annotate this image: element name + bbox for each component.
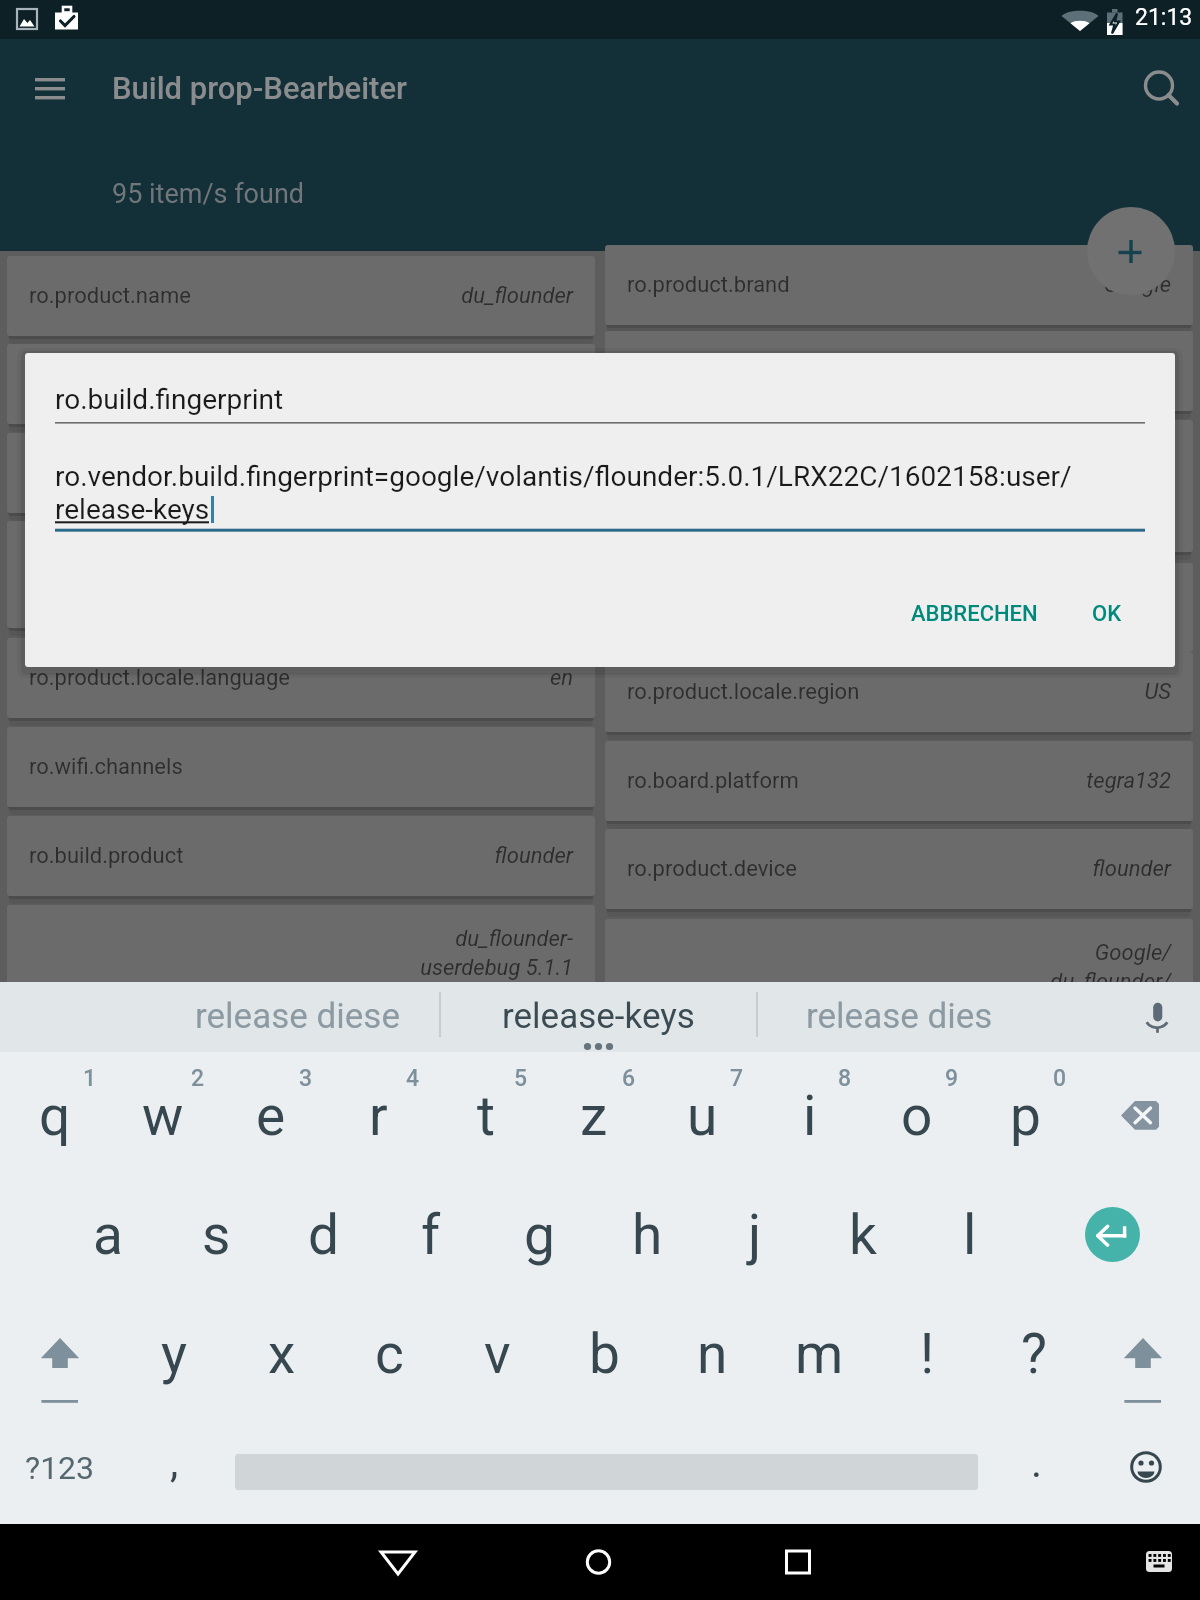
button[interactable]: j xyxy=(701,1195,809,1275)
button[interactable]: Search xyxy=(1129,56,1189,116)
button[interactable]: ro.board.platform xyxy=(605,741,1193,821)
staticText: , xyxy=(170,1438,179,1487)
staticText: 8 xyxy=(838,1065,852,1092)
button[interactable]: Home xyxy=(558,1524,638,1600)
staticText: ro.build.fingerprint xyxy=(55,383,284,416)
button[interactable]: z xyxy=(540,1076,648,1156)
button[interactable]: 2 xyxy=(144,1038,252,1118)
staticText: ABBRECHEN xyxy=(911,601,1038,627)
button[interactable]: , xyxy=(120,1422,228,1502)
staticText: test-keys xyxy=(1085,595,1171,621)
button[interactable]: du_flounder- userdebug 5.1.1 xyxy=(7,905,595,1000)
staticText: OK xyxy=(1092,601,1122,627)
button[interactable]: 9 xyxy=(898,1038,1006,1118)
button[interactable]: 4 xyxy=(359,1038,467,1118)
staticText: e xyxy=(256,1084,286,1148)
button[interactable]: k xyxy=(809,1195,917,1275)
button[interactable]: Shift xyxy=(1098,1300,1188,1410)
button[interactable]: u xyxy=(648,1076,756,1156)
button[interactable]: 5 xyxy=(467,1038,575,1118)
button[interactable]: n xyxy=(658,1314,766,1394)
button[interactable]: ABBRECHEN xyxy=(886,583,1062,645)
staticText: j xyxy=(748,1203,762,1267)
button[interactable]: Emoji xyxy=(1118,1439,1174,1495)
staticText: c xyxy=(375,1322,404,1386)
staticText: 9 xyxy=(945,1065,959,1092)
button[interactable]: l xyxy=(916,1195,1024,1275)
button[interactable]: Switch keyboard xyxy=(1129,1524,1189,1600)
staticText: ro.product.model xyxy=(29,460,198,486)
button[interactable]: c xyxy=(335,1314,443,1394)
button[interactable]: Back xyxy=(358,1524,438,1600)
button[interactable]: 3 xyxy=(252,1038,360,1118)
button[interactable]: Backspace xyxy=(1101,1080,1179,1154)
button[interactable]: Shift xyxy=(15,1300,105,1410)
staticText: x xyxy=(268,1322,296,1386)
button[interactable]: g xyxy=(485,1195,593,1275)
button[interactable]: ro.build.version.sdk xyxy=(605,331,1193,411)
button[interactable]: y xyxy=(120,1314,228,1394)
button[interactable]: ro.wifi.channels xyxy=(7,727,595,807)
button[interactable]: f xyxy=(377,1195,485,1275)
staticText: Build prop-Bearbeiter xyxy=(112,70,407,106)
button[interactable]: ro.product.locale.language xyxy=(7,638,595,718)
button[interactable]: ro.build.id xyxy=(7,521,595,628)
button[interactable]: Add property xyxy=(1087,207,1175,295)
button[interactable]: s xyxy=(162,1195,270,1275)
button[interactable]: ro.product.manufacturer xyxy=(605,420,1193,552)
staticText: d xyxy=(308,1203,340,1267)
button[interactable]: 0 xyxy=(1006,1038,1114,1118)
button[interactable]: q xyxy=(1,1076,109,1156)
staticText: n xyxy=(697,1322,728,1386)
button[interactable]: b xyxy=(550,1314,658,1394)
button[interactable]: release dies xyxy=(749,982,1049,1050)
button[interactable]: h xyxy=(593,1195,701,1275)
button[interactable]: OK xyxy=(1066,583,1148,645)
button[interactable]: ro.build.version.release xyxy=(7,344,595,424)
button[interactable]: Enter xyxy=(1085,1207,1140,1262)
button[interactable]: Google/ du_flounder/ xyxy=(605,919,1193,1014)
button[interactable]: 8 xyxy=(791,1038,899,1118)
button[interactable]: d xyxy=(270,1195,378,1275)
button[interactable]: x xyxy=(228,1314,336,1394)
button[interactable]: ! xyxy=(873,1314,981,1394)
button[interactable]: v xyxy=(443,1314,551,1394)
button[interactable]: ro.product.brand xyxy=(605,245,1193,325)
button[interactable]: 7 xyxy=(683,1038,791,1118)
button[interactable]: ro.product.name xyxy=(7,256,595,336)
staticText: k xyxy=(849,1203,877,1267)
button[interactable]: ?123 xyxy=(6,1428,114,1508)
button[interactable]: w xyxy=(109,1076,217,1156)
button[interactable]: ro.build.product xyxy=(7,816,595,896)
button[interactable]: ? xyxy=(980,1314,1088,1394)
button[interactable]: o xyxy=(863,1076,971,1156)
staticText: 6 xyxy=(622,1065,636,1092)
button[interactable]: i xyxy=(756,1076,864,1156)
button[interactable]: ro.product.locale.region xyxy=(605,652,1193,732)
staticText: ro.build.product xyxy=(29,843,184,869)
button[interactable]: ro.build.tags xyxy=(605,563,1193,652)
staticText: i xyxy=(803,1084,817,1148)
button[interactable]: 1 xyxy=(36,1038,144,1118)
button[interactable]: release-keys xyxy=(448,982,748,1050)
button[interactable]: m xyxy=(765,1314,873,1394)
button[interactable]: Open navigation drawer xyxy=(20,58,80,118)
staticText: z xyxy=(580,1084,608,1148)
button[interactable]: ro.product.device xyxy=(605,829,1193,909)
button[interactable]: a xyxy=(54,1195,162,1275)
button[interactable]: Recent apps xyxy=(758,1524,838,1600)
button[interactable]: . xyxy=(983,1422,1091,1502)
staticText: flounder xyxy=(494,843,573,869)
button[interactable]: 6 xyxy=(575,1038,683,1118)
button[interactable]: ro.product.model xyxy=(7,433,595,513)
button[interactable]: r xyxy=(324,1076,432,1156)
button[interactable]: e xyxy=(217,1076,325,1156)
button[interactable]: p xyxy=(971,1076,1079,1156)
staticText: v xyxy=(484,1322,511,1386)
staticText: ro.product.manufacturer xyxy=(627,473,867,499)
staticText: 0 xyxy=(1053,1065,1067,1092)
button[interactable]: t xyxy=(432,1076,540,1156)
button[interactable]: release diese xyxy=(147,982,447,1050)
